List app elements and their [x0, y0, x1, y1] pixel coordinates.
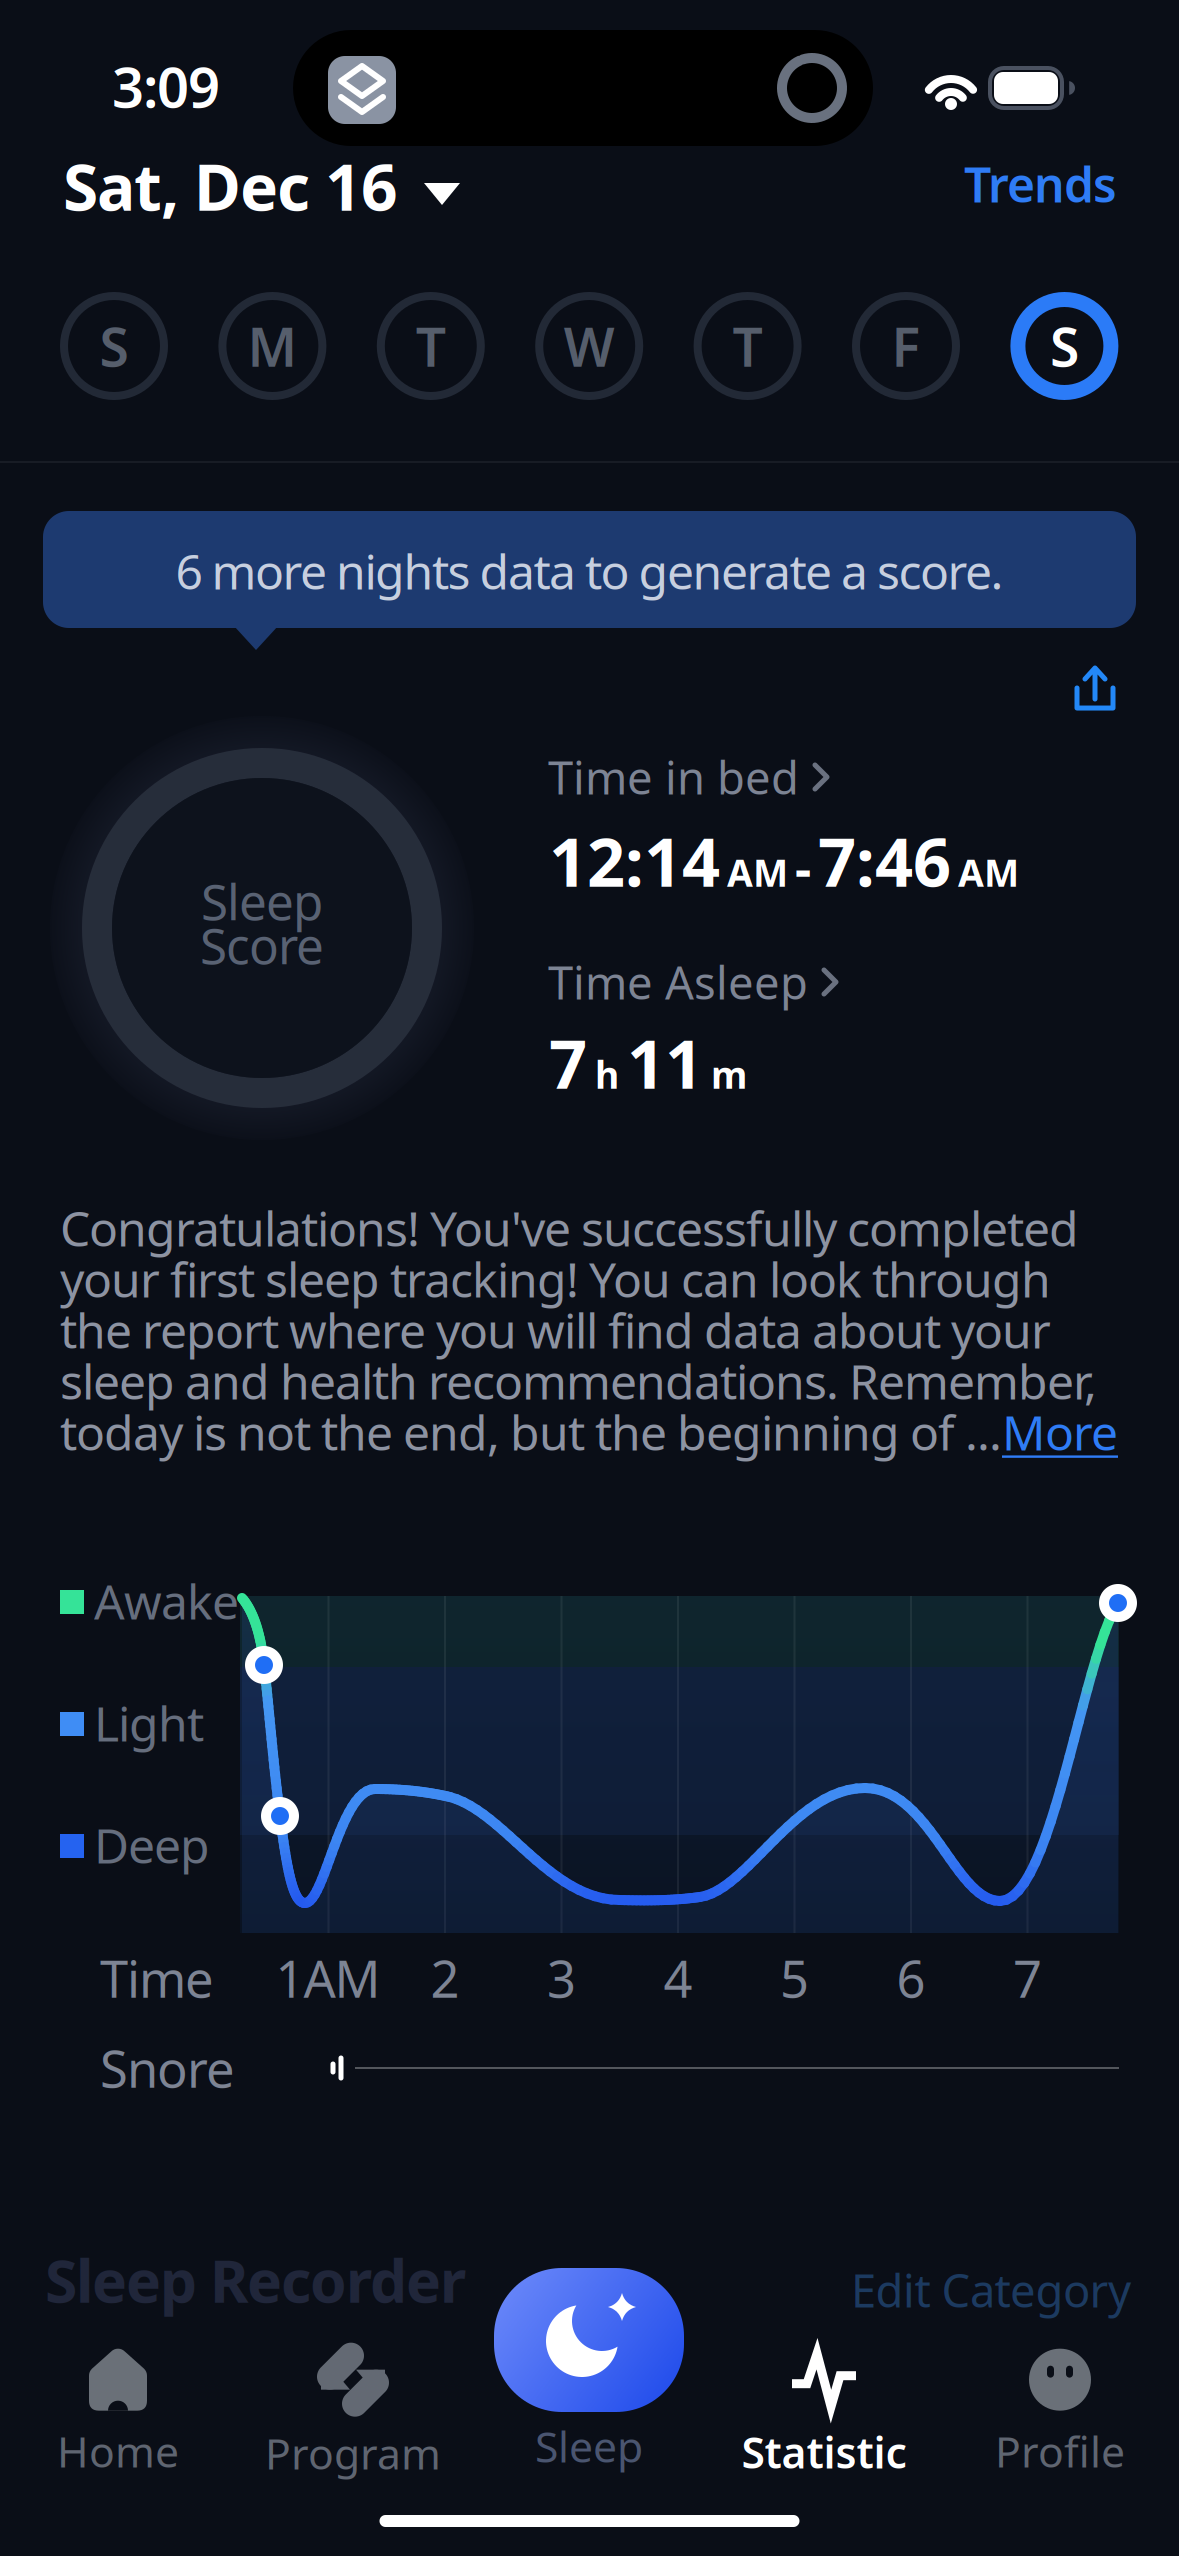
staticText: Awake: [94, 1569, 239, 1633]
button[interactable]: More: [1002, 1400, 1118, 1464]
staticText: h: [595, 1050, 619, 1099]
staticText: Time Asleep: [548, 952, 808, 1012]
staticText: Edit Category: [851, 2260, 1131, 2320]
staticText: 12:14: [549, 817, 720, 905]
staticText: 3: [547, 1944, 576, 2012]
staticText: the report where you will find data abou…: [60, 1298, 1051, 1362]
button[interactable]: T: [694, 292, 802, 400]
staticText: sleep and health recommendations. Rememb…: [60, 1349, 1097, 1413]
button[interactable]: Statistic: [741, 2348, 906, 2480]
staticText: Profile: [995, 2423, 1125, 2479]
staticText: 7:46: [818, 817, 951, 905]
staticText: 6 more nights data to generate a score.: [175, 539, 1003, 603]
button[interactable]: Trends: [964, 152, 1117, 216]
staticText: 4: [663, 1944, 692, 2012]
staticText: 11: [627, 1019, 703, 1107]
staticText: Statistic: [741, 2424, 906, 2480]
staticText: Snore: [100, 2034, 235, 2102]
button[interactable]: Profile: [995, 2349, 1125, 2479]
staticText: Time: [100, 1944, 214, 2012]
staticText: AM: [727, 848, 788, 897]
staticText: Light: [94, 1691, 204, 1755]
staticText: Score: [200, 912, 324, 978]
staticText: 2: [430, 1944, 459, 2012]
staticText: m: [711, 1050, 747, 1099]
staticText: AM: [958, 848, 1019, 897]
button[interactable]: Time Asleep: [548, 952, 840, 1012]
staticText: Program: [265, 2425, 441, 2481]
button[interactable]: T: [377, 292, 485, 400]
staticText: T: [733, 311, 763, 381]
staticText: -: [795, 834, 811, 901]
staticText: Time in bed: [548, 747, 799, 807]
staticText: W: [564, 311, 615, 381]
button[interactable]: Sleep: [494, 2268, 684, 2412]
staticText: F: [891, 311, 920, 381]
staticText: More: [1002, 1400, 1118, 1464]
button[interactable]: Edit Category: [851, 2260, 1131, 2320]
staticText: 7: [549, 1019, 587, 1107]
staticText: 6: [896, 1944, 925, 2012]
staticText: your first sleep tracking! You can look …: [60, 1247, 1051, 1311]
button[interactable]: Program: [265, 2347, 441, 2481]
staticText: 7: [1013, 1944, 1042, 2012]
button[interactable]: W: [535, 292, 643, 400]
staticText: Trends: [964, 152, 1117, 216]
staticText: 1AM: [275, 1944, 380, 2012]
staticText: Home: [57, 2423, 179, 2479]
staticText: Sleep Recorder: [45, 2241, 466, 2319]
staticText: Deep: [94, 1813, 210, 1877]
staticText: S: [1050, 311, 1079, 381]
staticText: today is not the end, but the beginning …: [60, 1400, 1002, 1464]
staticText: 5: [780, 1944, 809, 2012]
staticText: 3:09: [112, 49, 220, 123]
button[interactable]: M: [218, 292, 326, 400]
staticText: Sat, Dec 16: [63, 143, 398, 228]
button[interactable]: Share: [0, 0, 1179, 2556]
staticText: T: [416, 311, 446, 381]
button[interactable]: Home: [57, 2349, 179, 2479]
staticText: M: [247, 311, 297, 381]
button[interactable]: S: [1010, 292, 1118, 400]
button[interactable]: S: [60, 292, 168, 400]
staticText: S: [99, 311, 128, 381]
button[interactable]: Time in bed: [548, 747, 831, 807]
button[interactable]: Sat, Dec 16: [63, 143, 460, 228]
staticText: Congratulations! You've successfully com…: [60, 1196, 1079, 1260]
button[interactable]: F: [852, 292, 960, 400]
staticText: Sleep: [201, 868, 323, 934]
staticText: Sleep: [535, 2418, 643, 2474]
